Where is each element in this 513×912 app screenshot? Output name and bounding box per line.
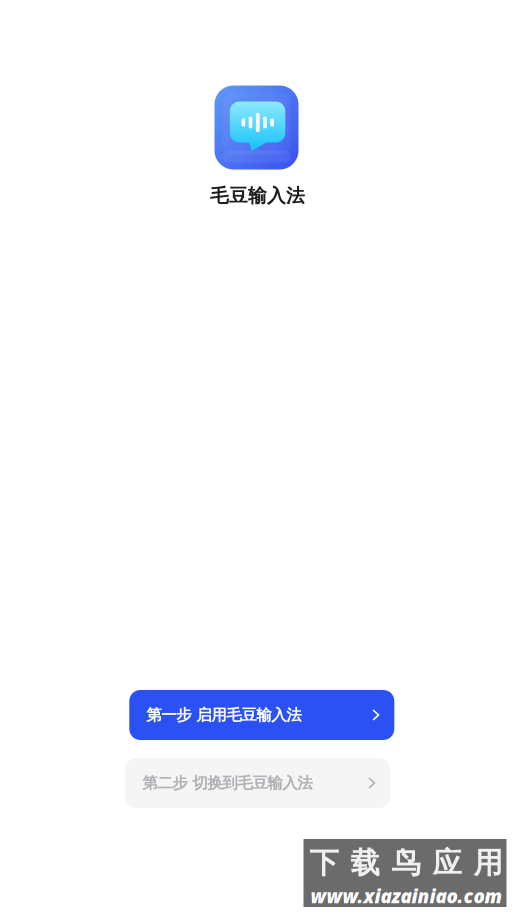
staticText: 毛豆输入法 [210,184,305,207]
staticText: www.xiazainiao.com [310,883,502,909]
staticText: 第一步 启用毛豆输入法 [146,705,301,725]
button[interactable]: 第一步 启用毛豆输入法 [129,690,394,740]
button[interactable]: 第二步 切换到毛豆输入法 [125,758,390,808]
staticText: 第二步 切换到毛豆输入法 [142,773,312,793]
staticText: 下载鸟应用 [309,844,502,881]
